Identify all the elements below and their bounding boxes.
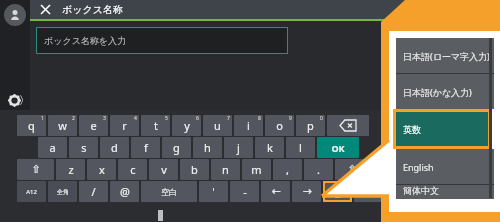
staticText: h [204, 140, 211, 155]
staticText: q [28, 118, 35, 133]
button[interactable]: i [234, 115, 263, 136]
staticText: f [144, 140, 148, 155]
button[interactable]: w [48, 115, 77, 136]
staticText: 7 [227, 115, 230, 122]
button[interactable]: m [242, 159, 271, 180]
staticText: k [267, 140, 273, 155]
staticText: / [91, 184, 96, 199]
button[interactable]: b [180, 159, 209, 180]
button[interactable]: Close [36, 0, 55, 19]
button[interactable]: 日本語(かな入力) [396, 74, 494, 109]
button[interactable]: f [131, 137, 160, 158]
button[interactable]: e [79, 115, 108, 136]
button[interactable]: English [396, 149, 494, 184]
staticText: t [154, 118, 158, 133]
button[interactable]: x [87, 159, 116, 180]
staticText: a [49, 140, 56, 155]
staticText: 3 [103, 115, 106, 122]
staticText: x [99, 162, 105, 177]
staticText: 0 [320, 115, 323, 122]
staticText: OK [331, 142, 345, 154]
button[interactable]: s [69, 137, 98, 158]
staticText: u [214, 118, 221, 133]
button[interactable]: 全角 [48, 181, 77, 202]
button[interactable]: o [265, 115, 294, 136]
button[interactable]: 簡体中文 [396, 185, 494, 199]
button[interactable]: 英数 [396, 112, 488, 146]
staticText: 全角 [57, 188, 69, 196]
button[interactable]: l [286, 137, 315, 158]
button[interactable] [354, 181, 383, 202]
staticText: y [184, 118, 190, 133]
staticText: 簡体中文 [403, 185, 439, 196]
staticText: i [247, 118, 250, 133]
staticText: 空白 [161, 187, 177, 197]
staticText: 5 [165, 115, 168, 122]
staticText: ボックス名称を入力 [44, 35, 127, 46]
button[interactable]: g [162, 137, 191, 158]
button[interactable]: v [149, 159, 178, 180]
button[interactable]: OK [317, 137, 359, 158]
button[interactable]: k [255, 137, 284, 158]
staticText: c [130, 162, 136, 177]
button[interactable]: ← [261, 181, 290, 202]
button[interactable]: c [118, 159, 147, 180]
button[interactable]: r [110, 115, 139, 136]
staticText: d [111, 140, 118, 155]
button[interactable]: h [193, 137, 222, 158]
button[interactable]: d [100, 137, 129, 158]
staticText: p [307, 118, 314, 133]
button[interactable]: q [17, 115, 46, 136]
staticText: z [68, 162, 74, 177]
staticText: → [302, 185, 312, 198]
staticText: @ [120, 184, 130, 199]
button[interactable]: , [273, 159, 302, 180]
staticText: v [161, 162, 167, 177]
button[interactable]: 空白 [141, 181, 197, 202]
staticText: 6 [196, 115, 199, 122]
button[interactable]: . [304, 159, 333, 180]
staticText: 8 [258, 115, 261, 122]
staticText: English [403, 161, 434, 173]
staticText: , [286, 162, 289, 177]
staticText: o [276, 118, 283, 133]
staticText: - [243, 184, 247, 199]
button[interactable]: a [38, 137, 67, 158]
staticText: j [237, 140, 240, 155]
button[interactable]: / [79, 181, 108, 202]
staticText: 1 [41, 115, 44, 122]
staticText: g [173, 140, 180, 155]
button[interactable]: ⇧ [17, 159, 54, 180]
button[interactable]: p [296, 115, 325, 136]
button[interactable] [327, 115, 369, 136]
button[interactable]: u [203, 115, 232, 136]
button[interactable]: j [224, 137, 253, 158]
button[interactable]: 日本語(ローマ字入力) [396, 38, 494, 73]
button[interactable] [325, 183, 350, 200]
staticText: 2 [72, 115, 75, 122]
button[interactable]: z [56, 159, 85, 180]
staticText: ⇧ [31, 163, 41, 176]
staticText: 4 [134, 115, 137, 122]
staticText: m [251, 162, 262, 177]
staticText: r [122, 118, 127, 133]
button[interactable]: y [172, 115, 201, 136]
button[interactable]: ' [199, 181, 228, 202]
button[interactable]: n [211, 159, 240, 180]
staticText: ← [271, 185, 281, 198]
staticText: 〉 [19, 93, 30, 107]
staticText: 9 [289, 115, 292, 122]
button[interactable]: @ [110, 181, 139, 202]
staticText: ボックス名称 [62, 3, 123, 16]
staticText: b [191, 162, 198, 177]
staticText: e [90, 118, 97, 133]
button[interactable]: t [141, 115, 170, 136]
button[interactable]: A12 [17, 181, 46, 202]
button[interactable]: ⇧ [335, 159, 369, 180]
button[interactable]: → [292, 181, 321, 202]
button[interactable]: Settings [4, 90, 24, 110]
button[interactable]: Account [4, 4, 26, 26]
staticText: l [299, 140, 302, 155]
button[interactable]: - [230, 181, 259, 202]
button[interactable]: ボックス名称を入力 [36, 27, 288, 54]
